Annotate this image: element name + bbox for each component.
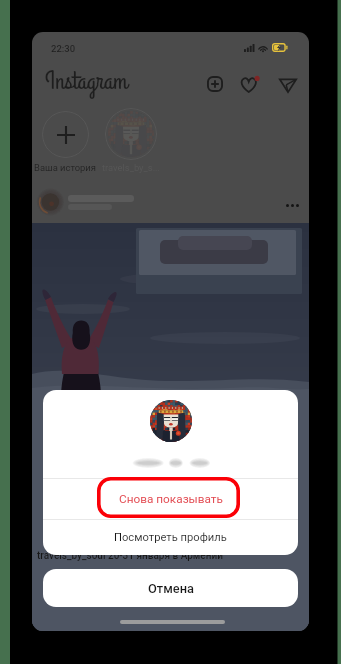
staticText: Ваша история bbox=[33, 162, 97, 173]
button[interactable]: New post bbox=[203, 72, 227, 96]
staticText: Отмена bbox=[148, 581, 194, 596]
staticText: travels_by_soul 20-31 января в Армении bbox=[37, 550, 223, 562]
button[interactable]: Add to your story bbox=[42, 111, 89, 158]
button[interactable]: Отмена bbox=[43, 569, 298, 607]
button[interactable]: Посмотреть профиль bbox=[43, 520, 298, 555]
button[interactable]: Снова показывать bbox=[43, 479, 298, 519]
button[interactable]: travels_by_s story bbox=[105, 108, 157, 160]
button[interactable]: Direct messages bbox=[276, 72, 300, 96]
staticText: Instagram bbox=[45, 63, 128, 98]
button[interactable]: More options bbox=[279, 192, 305, 218]
staticText: Снова показывать bbox=[119, 492, 223, 506]
button[interactable]: Activity bbox=[237, 72, 261, 96]
staticText: Посмотреть профиль bbox=[114, 531, 227, 544]
staticText: 22:30 bbox=[51, 43, 76, 54]
